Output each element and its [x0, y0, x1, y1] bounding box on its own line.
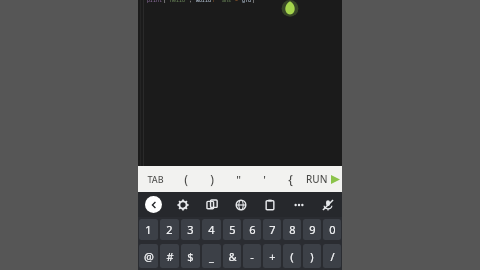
button[interactable]: GIF	[226, 192, 255, 217]
button[interactable]: &	[223, 244, 241, 268]
button[interactable]: 0	[323, 219, 341, 240]
button[interactable]: {	[277, 166, 303, 192]
button[interactable]: Back	[138, 192, 168, 217]
button[interactable]: (	[283, 244, 301, 268]
staticText: -	[250, 249, 254, 264]
staticText: +	[269, 249, 276, 264]
button[interactable]: )	[303, 244, 321, 268]
button[interactable]: /	[323, 244, 341, 268]
staticText: RUN	[306, 172, 328, 186]
button[interactable]: 4	[202, 219, 221, 240]
button[interactable]: -	[243, 244, 261, 268]
staticText: "Hello"	[167, 0, 189, 4]
staticText: 4	[208, 222, 215, 237]
staticText: #	[166, 249, 174, 264]
staticText: {	[288, 171, 293, 187]
staticText: 8	[289, 222, 296, 237]
button[interactable]: $	[181, 244, 200, 268]
button[interactable]: Voice input off	[313, 192, 342, 217]
button[interactable]: (	[172, 166, 199, 192]
button[interactable]: More options	[284, 192, 313, 217]
staticText: ,	[189, 0, 193, 4]
button[interactable]: 5	[223, 219, 241, 240]
button[interactable]: @	[139, 244, 158, 268]
staticText: (	[163, 0, 167, 4]
staticText: TAB	[147, 173, 164, 185]
staticText: 1	[145, 222, 152, 237]
staticText: =	[235, 0, 239, 4]
staticText: 2	[166, 222, 173, 237]
button[interactable]: Stickers	[197, 192, 226, 217]
staticText: 9	[309, 222, 316, 237]
button[interactable]: "	[225, 166, 251, 192]
staticText: '	[263, 172, 266, 187]
staticText: $	[187, 249, 194, 264]
button[interactable]: 2	[160, 219, 179, 240]
button[interactable]: )	[199, 166, 225, 192]
staticText: &	[228, 249, 237, 264]
staticText: 6	[249, 222, 256, 237]
staticText: 5	[229, 222, 236, 237]
staticText: )	[252, 0, 256, 4]
button[interactable]: '	[251, 166, 277, 192]
button[interactable]: 8	[283, 219, 301, 240]
staticText: gfu	[239, 0, 252, 4]
staticText: (	[290, 249, 294, 264]
button[interactable]: 6	[243, 219, 261, 240]
button[interactable]: 1	[139, 219, 158, 240]
staticText: 3	[187, 222, 194, 237]
staticText: world	[193, 0, 212, 4]
staticText: !	[212, 0, 216, 4]
staticText: _	[209, 249, 214, 264]
button[interactable]: 3	[181, 219, 200, 240]
button[interactable]: 9	[303, 219, 321, 240]
staticText: " ans	[216, 0, 235, 4]
button[interactable]: TAB	[138, 166, 172, 192]
staticText: 0	[329, 222, 336, 237]
staticText: (	[184, 171, 188, 187]
staticText: @	[144, 249, 154, 264]
button[interactable]: Clipboard	[255, 192, 284, 217]
staticText: "	[236, 172, 241, 187]
staticText: /	[330, 249, 335, 264]
button[interactable]: RUN	[303, 166, 342, 192]
staticText: 7	[269, 222, 276, 237]
staticText: print	[147, 0, 163, 4]
staticText: )	[310, 249, 314, 264]
button[interactable]: #	[160, 244, 179, 268]
button[interactable]: Settings	[168, 192, 197, 217]
button[interactable]: +	[263, 244, 281, 268]
button[interactable]: 7	[263, 219, 281, 240]
staticText: )	[210, 171, 214, 187]
button[interactable]: _	[202, 244, 221, 268]
